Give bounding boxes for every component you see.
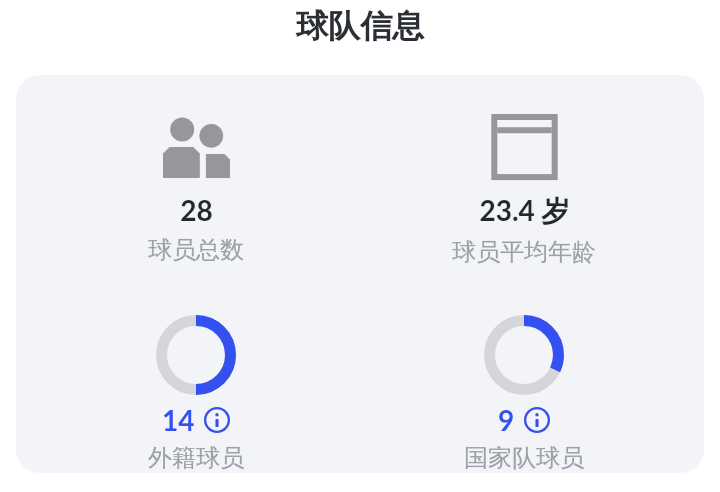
button[interactable]: 23.4 岁 <box>360 114 688 267</box>
staticText: 23.4 岁 <box>479 193 570 229</box>
staticText: 外籍球员 <box>148 443 244 473</box>
staticText: 国家队球员 <box>464 443 584 473</box>
staticText: 9 <box>498 403 515 437</box>
staticText: 28 <box>180 193 213 227</box>
staticText: 14 <box>162 403 195 437</box>
button[interactable]: 9 <box>360 315 688 473</box>
button[interactable]: Info <box>204 407 230 433</box>
staticText: 球员平均年龄 <box>452 237 596 267</box>
button[interactable]: 14 <box>32 315 360 473</box>
button[interactable]: Info <box>524 407 550 433</box>
button[interactable]: 28 <box>32 114 360 265</box>
staticText: 球队信息 <box>0 6 720 46</box>
staticText: 球员总数 <box>148 235 244 265</box>
